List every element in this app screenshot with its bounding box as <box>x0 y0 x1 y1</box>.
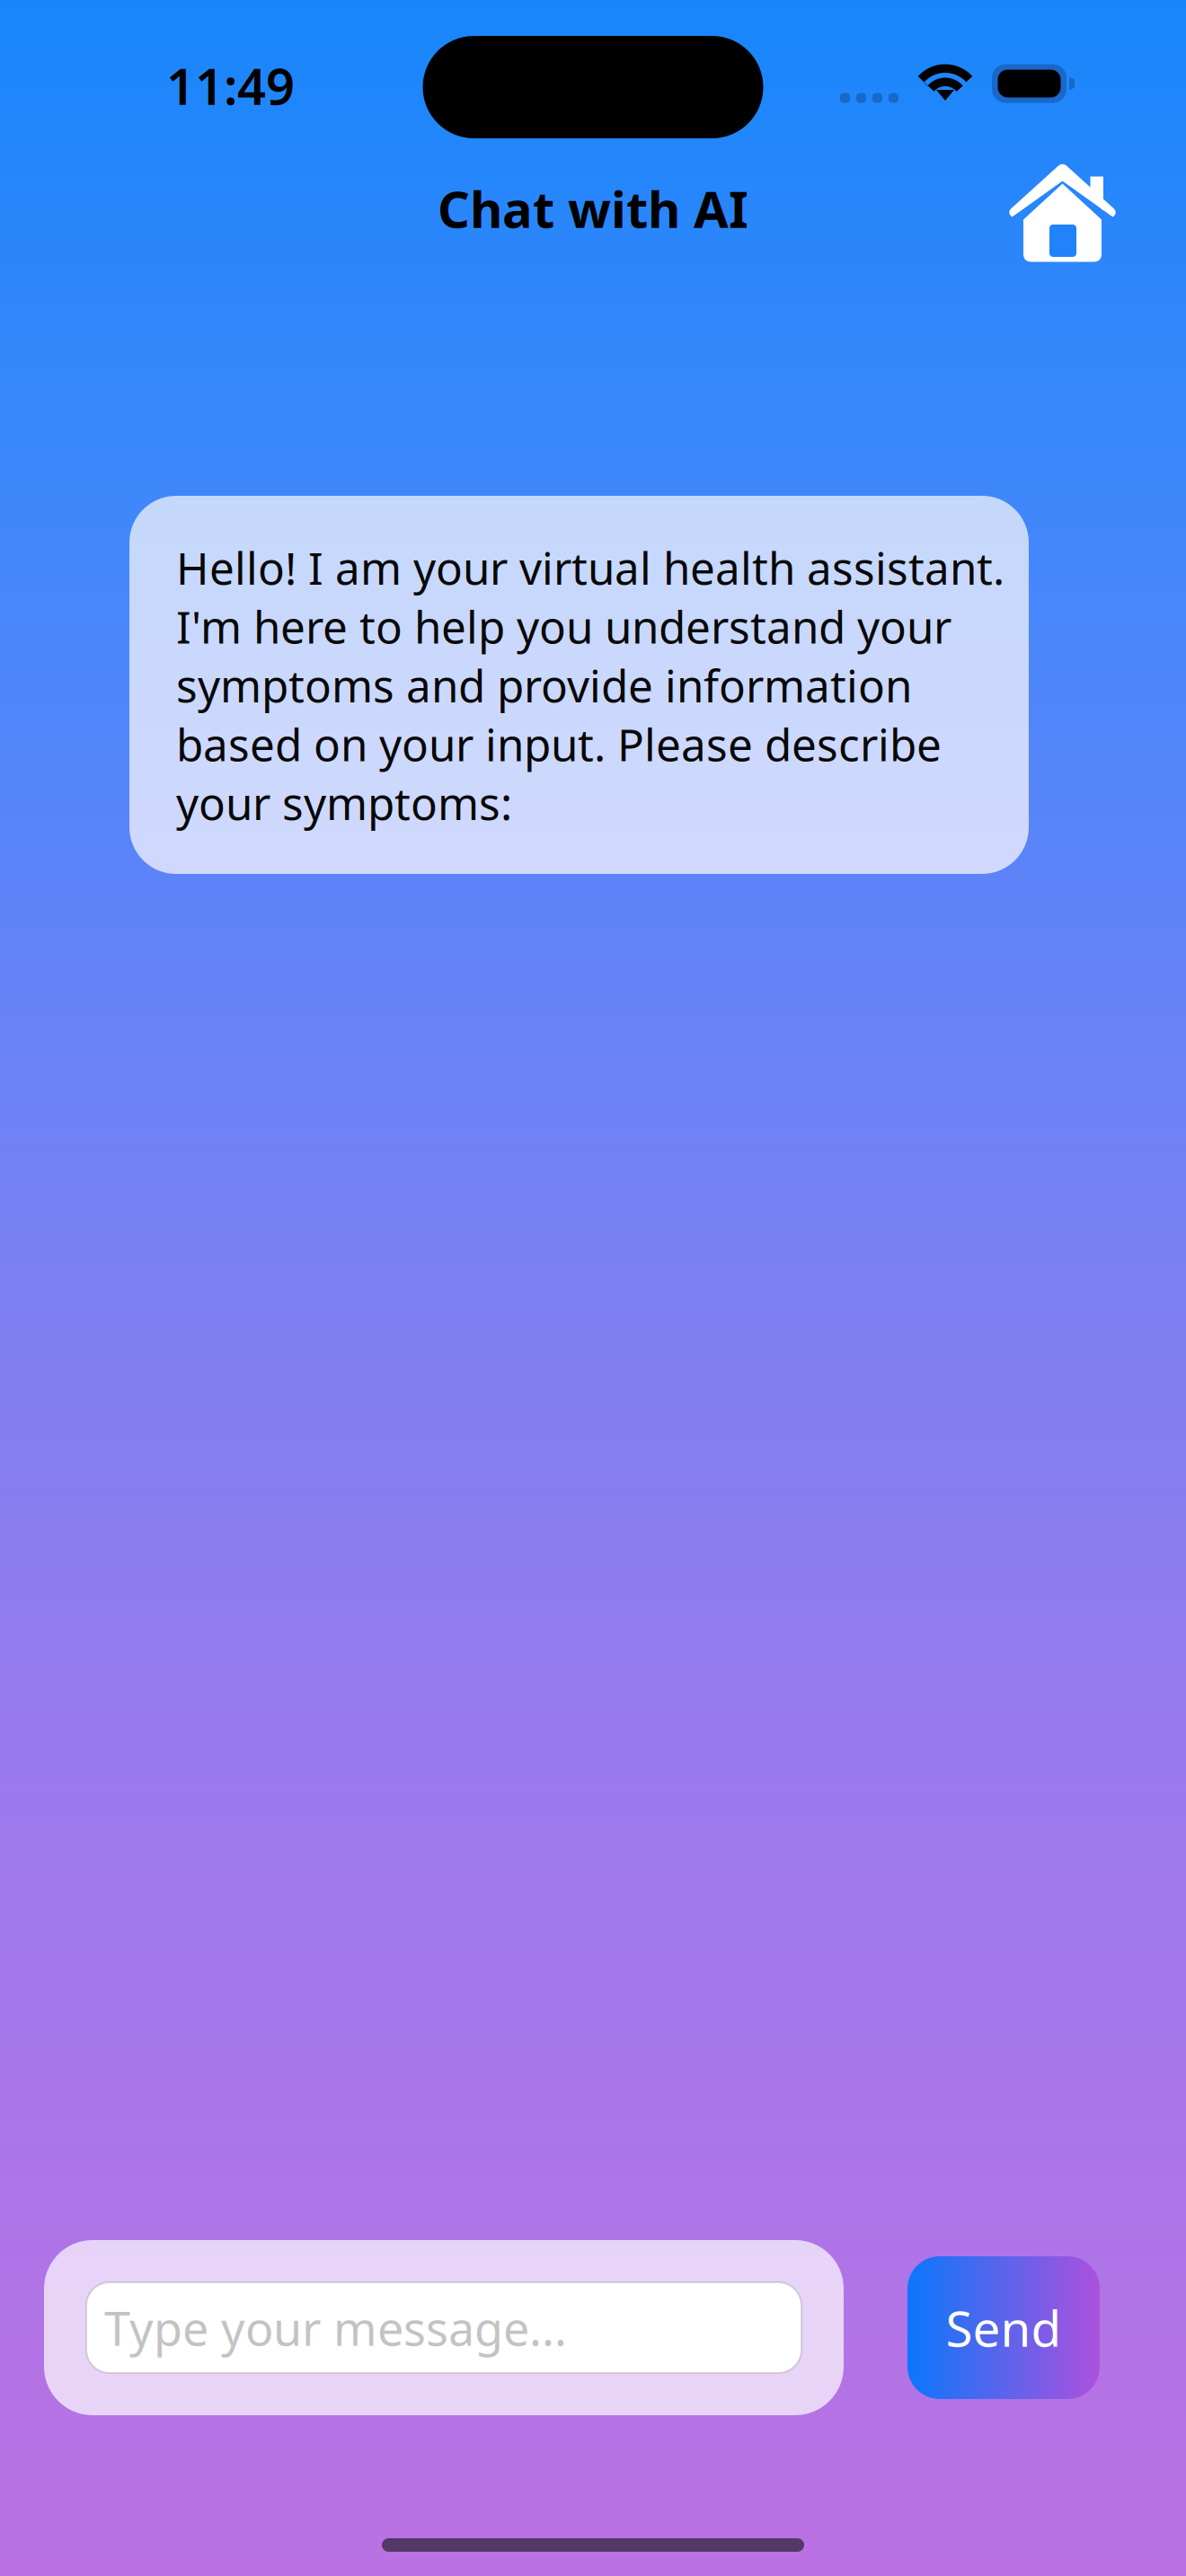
staticText: Chat with AI <box>438 175 748 242</box>
button[interactable]: Message field <box>44 2240 844 2415</box>
staticText: 11:49 <box>166 52 295 119</box>
staticText: Hello! I am your virtual health assistan… <box>176 538 1005 832</box>
button[interactable]: Send <box>907 2256 1100 2399</box>
staticText: Type your message... <box>104 2297 567 2359</box>
button[interactable]: Home <box>1007 144 1120 260</box>
staticText: Send <box>946 2295 1062 2360</box>
